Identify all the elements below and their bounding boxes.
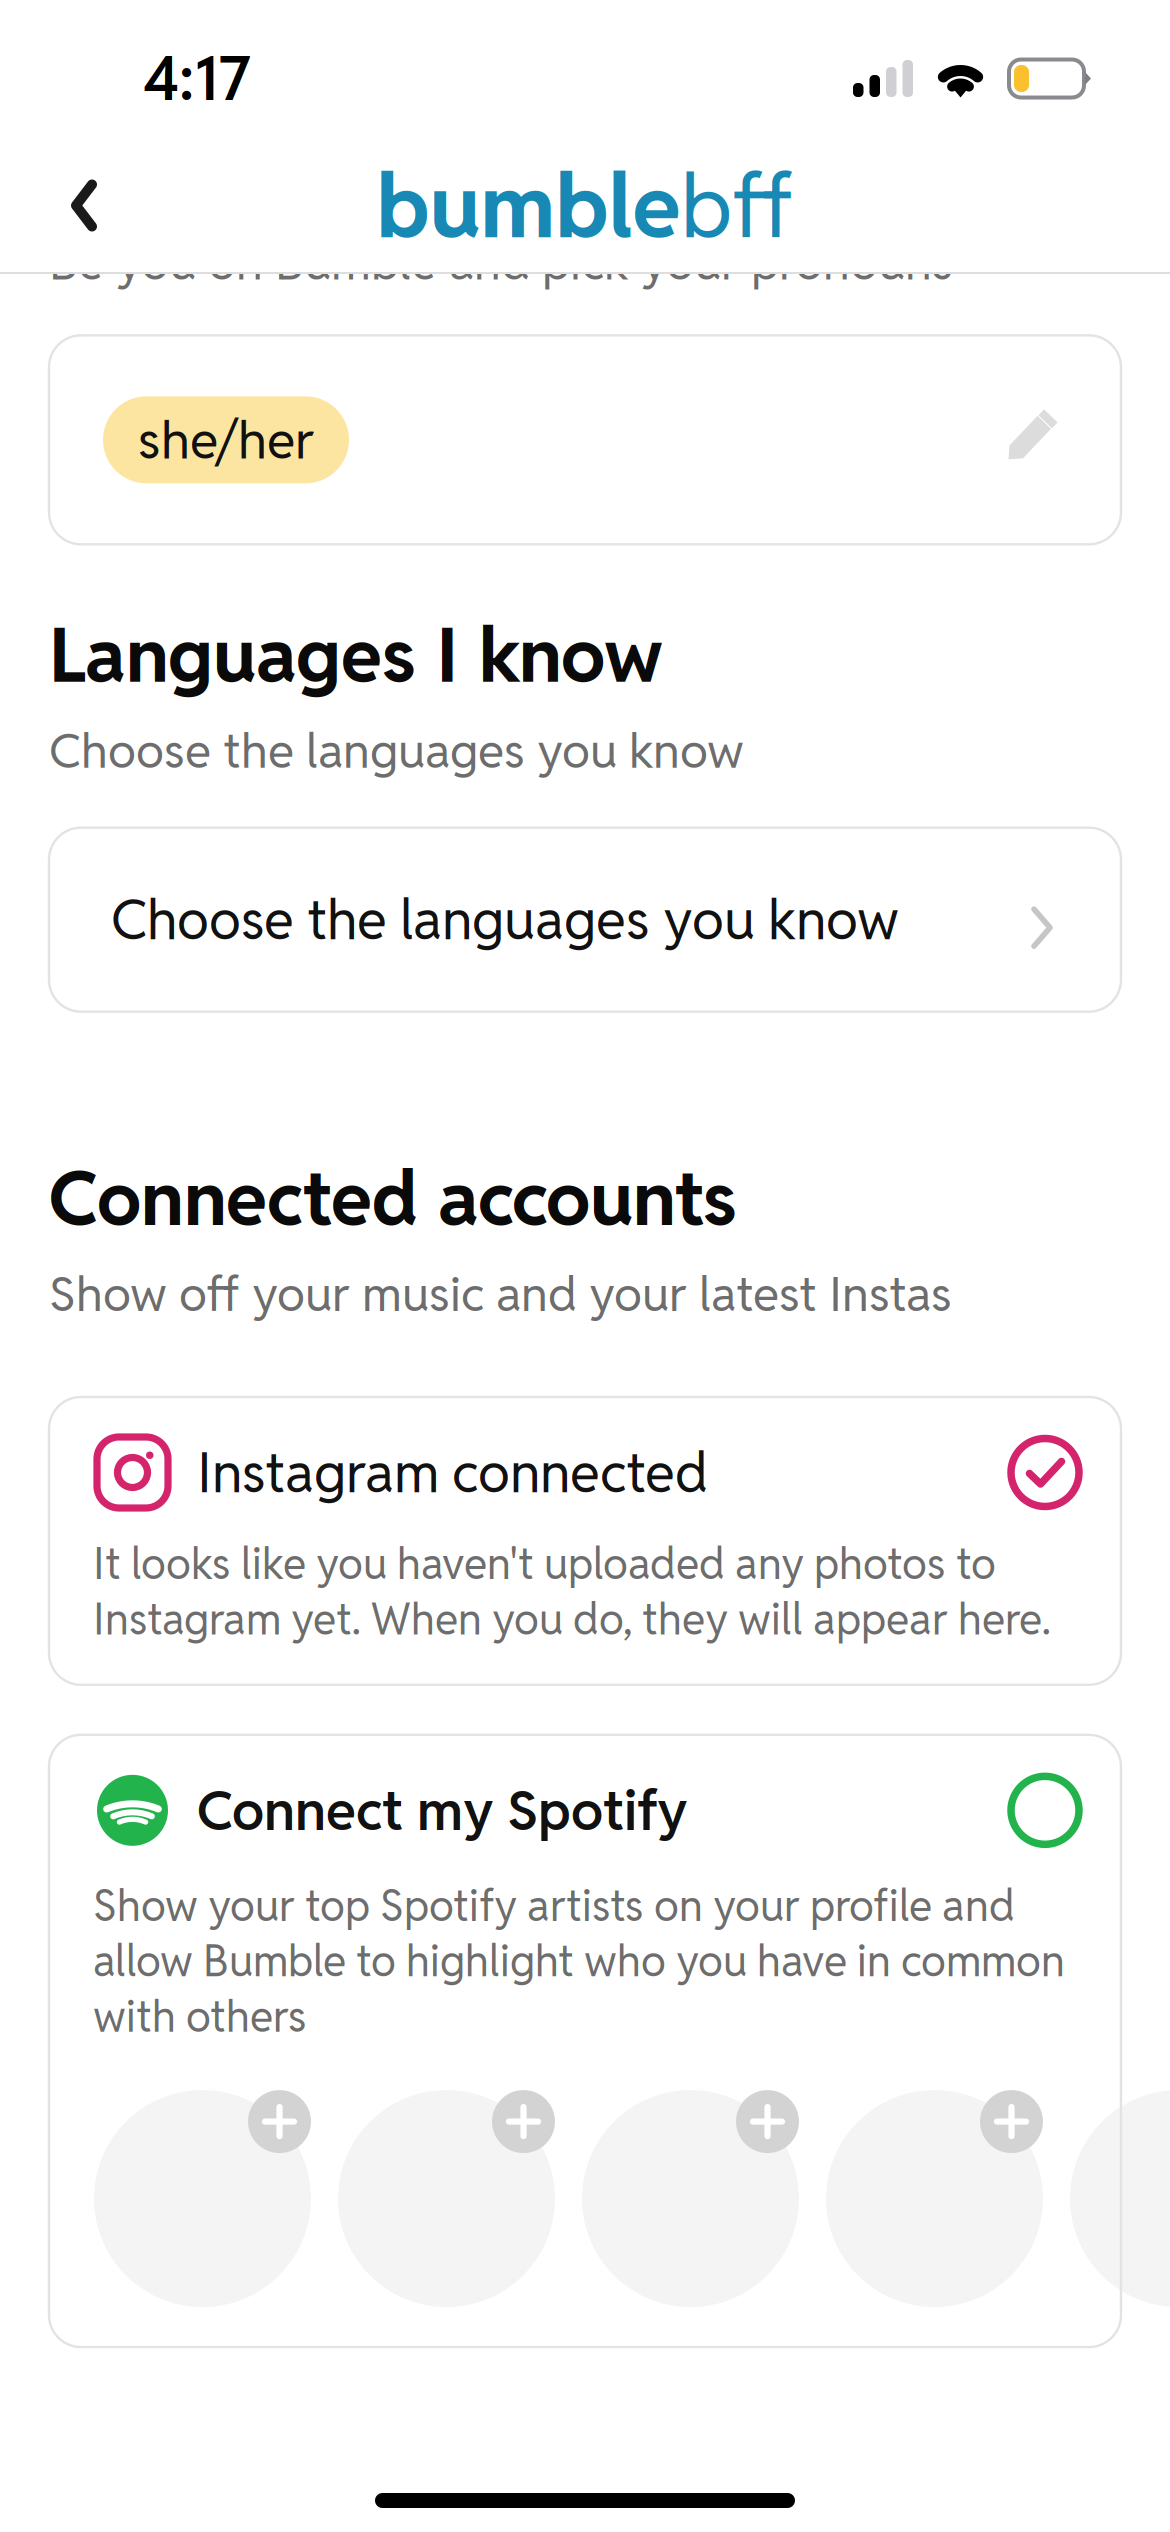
button[interactable]: Connect my Spotify: [49, 1735, 1121, 2347]
button[interactable]: Instagram connected: [49, 1397, 1121, 1685]
staticText: bumble: [376, 148, 680, 263]
staticText: she/her: [138, 406, 314, 474]
staticText: 4:17: [143, 39, 251, 117]
button[interactable]: Back: [0, 137, 147, 274]
button[interactable]: Choose the languages you know: [49, 828, 1121, 1012]
staticText: Connect my Spotify: [197, 1775, 687, 1846]
staticText: bff: [680, 148, 793, 263]
staticText: It looks like you haven't uploaded any p…: [93, 1536, 1051, 1647]
staticText: Instagram connected: [197, 1437, 708, 1508]
staticText: Connected accounts: [49, 1150, 737, 1247]
staticText: Choose the languages you know: [111, 884, 899, 955]
staticText: Be you on Bumble and pick your pronouns: [49, 231, 953, 293]
staticText: Choose the languages you know: [49, 719, 744, 782]
button[interactable]: Edit pronouns: [49, 335, 1121, 544]
staticText: Show off your music and your latest Inst…: [49, 1263, 952, 1325]
staticText: Show your top Spotify artists on your pr…: [93, 1878, 1065, 2044]
staticText: Languages I know: [49, 606, 663, 703]
